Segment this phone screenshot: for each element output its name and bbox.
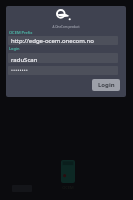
staticText: OCEM Prefix <box>9 30 33 35</box>
staticText: Login <box>98 81 115 89</box>
staticText: A OneCom product <box>6 25 126 29</box>
other: Logo <box>56 9 72 21</box>
button[interactable]: Login <box>92 79 120 91</box>
button[interactable]: raduScan <box>8 53 118 63</box>
staticText: raduScan <box>11 56 38 63</box>
button[interactable]: http://edge-ocem.onecom.no <box>8 36 118 45</box>
staticText: Login <box>9 46 20 51</box>
staticText: http://edge-ocem.onecom.no <box>11 37 94 45</box>
button[interactable]: Password <box>8 66 118 75</box>
